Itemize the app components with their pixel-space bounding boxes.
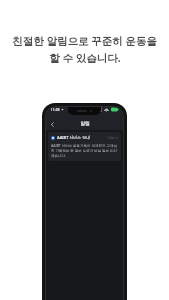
staticText: AAIRT 서비스 안내: [57, 135, 90, 140]
staticText: 알림: [80, 121, 90, 127]
staticText: 할 수 있습니다.: [49, 51, 121, 65]
staticText: 11:28: [50, 107, 60, 112]
button[interactable]: AAIRT 서비스 안내: [48, 132, 121, 161]
staticText: AAIRT 서비스 운동기록이 연계되지 고객님의 기록정보 중 일부 누군가 …: [51, 143, 117, 158]
staticText: 친절한 알림으로 꾸준히 운동을: [12, 34, 157, 48]
button[interactable]: Back: [47, 119, 58, 130]
staticText: 12일 전: [107, 136, 118, 140]
